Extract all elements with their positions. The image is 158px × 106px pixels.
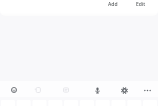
staticText: Edit bbox=[136, 1, 146, 8]
button[interactable]: Add bbox=[106, 0, 120, 9]
staticText: Add bbox=[108, 1, 118, 8]
button[interactable]: Emoji bbox=[5, 81, 23, 99]
button[interactable]: Clipboard bbox=[57, 81, 75, 99]
button[interactable]: Voice input bbox=[88, 81, 106, 99]
button[interactable]: Edit bbox=[134, 0, 148, 9]
button[interactable]: Stickers bbox=[29, 81, 47, 99]
button[interactable]: Settings bbox=[115, 81, 133, 99]
button[interactable]: More options bbox=[138, 81, 156, 99]
